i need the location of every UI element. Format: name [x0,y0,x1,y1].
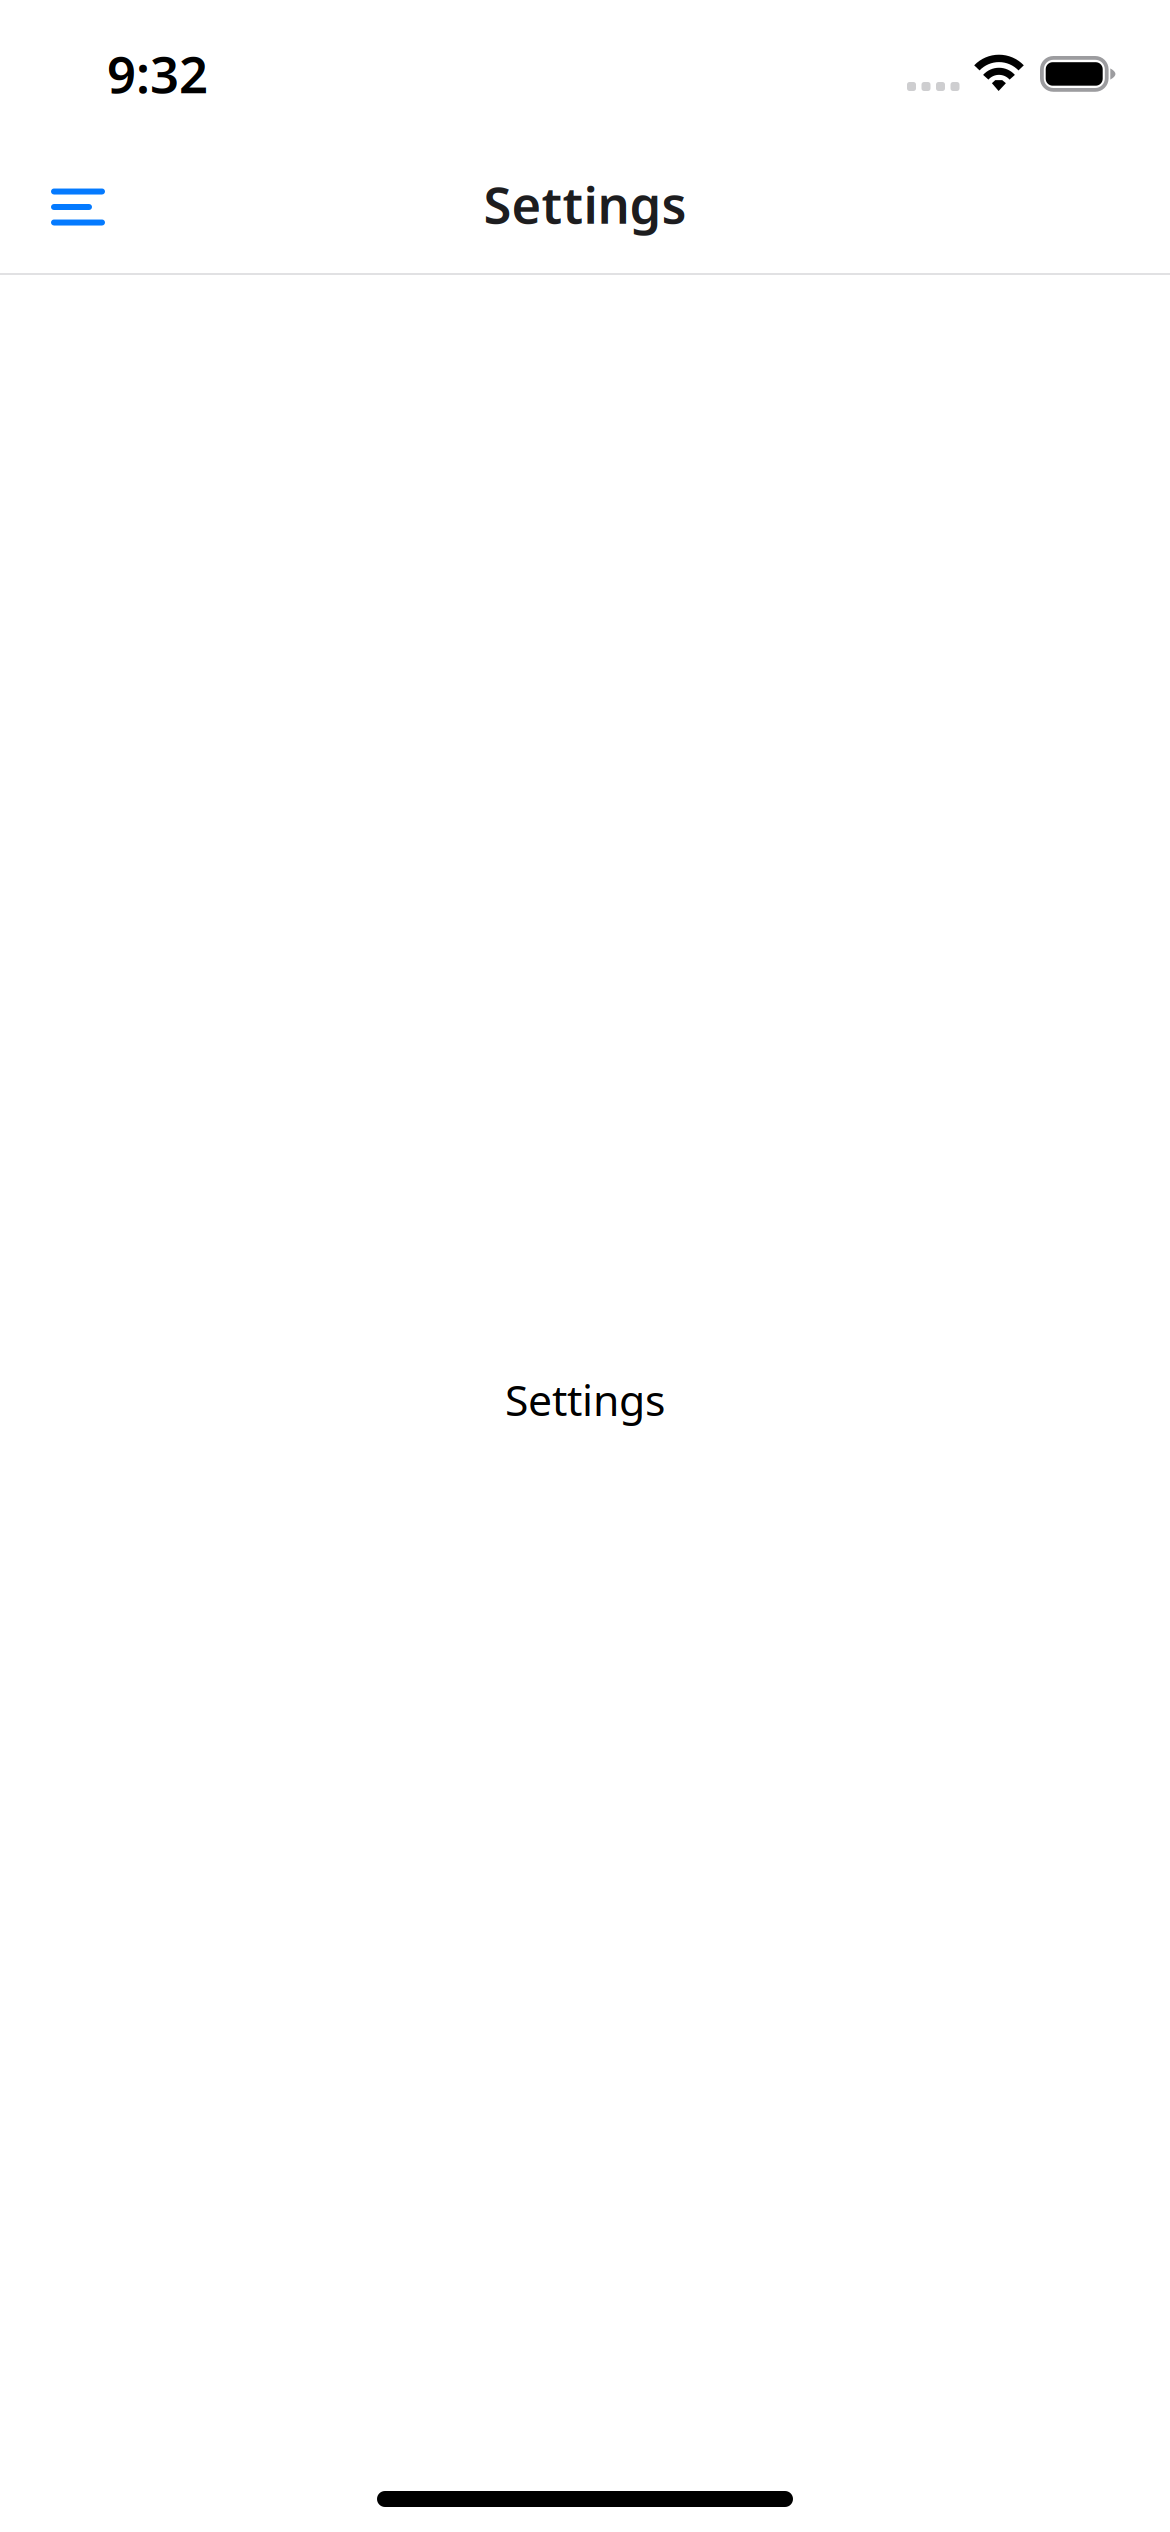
staticText: Settings [505,1371,665,1428]
staticText: Settings [483,170,686,238]
staticText: 9:32 [107,40,208,107]
button[interactable]: Menu [0,164,144,249]
